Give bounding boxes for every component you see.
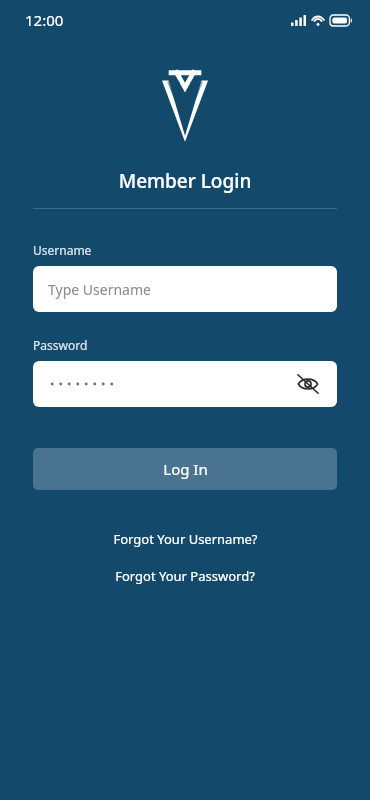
button[interactable]: Forgot Your Password? — [0, 563, 370, 589]
staticText: Log In — [163, 459, 208, 479]
button[interactable]: Forgot Your Username? — [0, 526, 370, 552]
staticText: Member Login — [0, 168, 370, 194]
staticText: 12:00 — [25, 10, 64, 30]
button[interactable]: Type Username — [33, 266, 337, 312]
staticText: Forgot Your Password? — [115, 567, 255, 585]
staticText: Username — [33, 242, 92, 258]
button[interactable]: Show password — [293, 369, 323, 399]
button[interactable]: Log In — [33, 448, 337, 490]
button[interactable]: Show password — [33, 361, 337, 407]
staticText: Password — [33, 337, 88, 353]
staticText: Forgot Your Username? — [113, 530, 258, 548]
staticText: Type Username — [48, 280, 151, 299]
